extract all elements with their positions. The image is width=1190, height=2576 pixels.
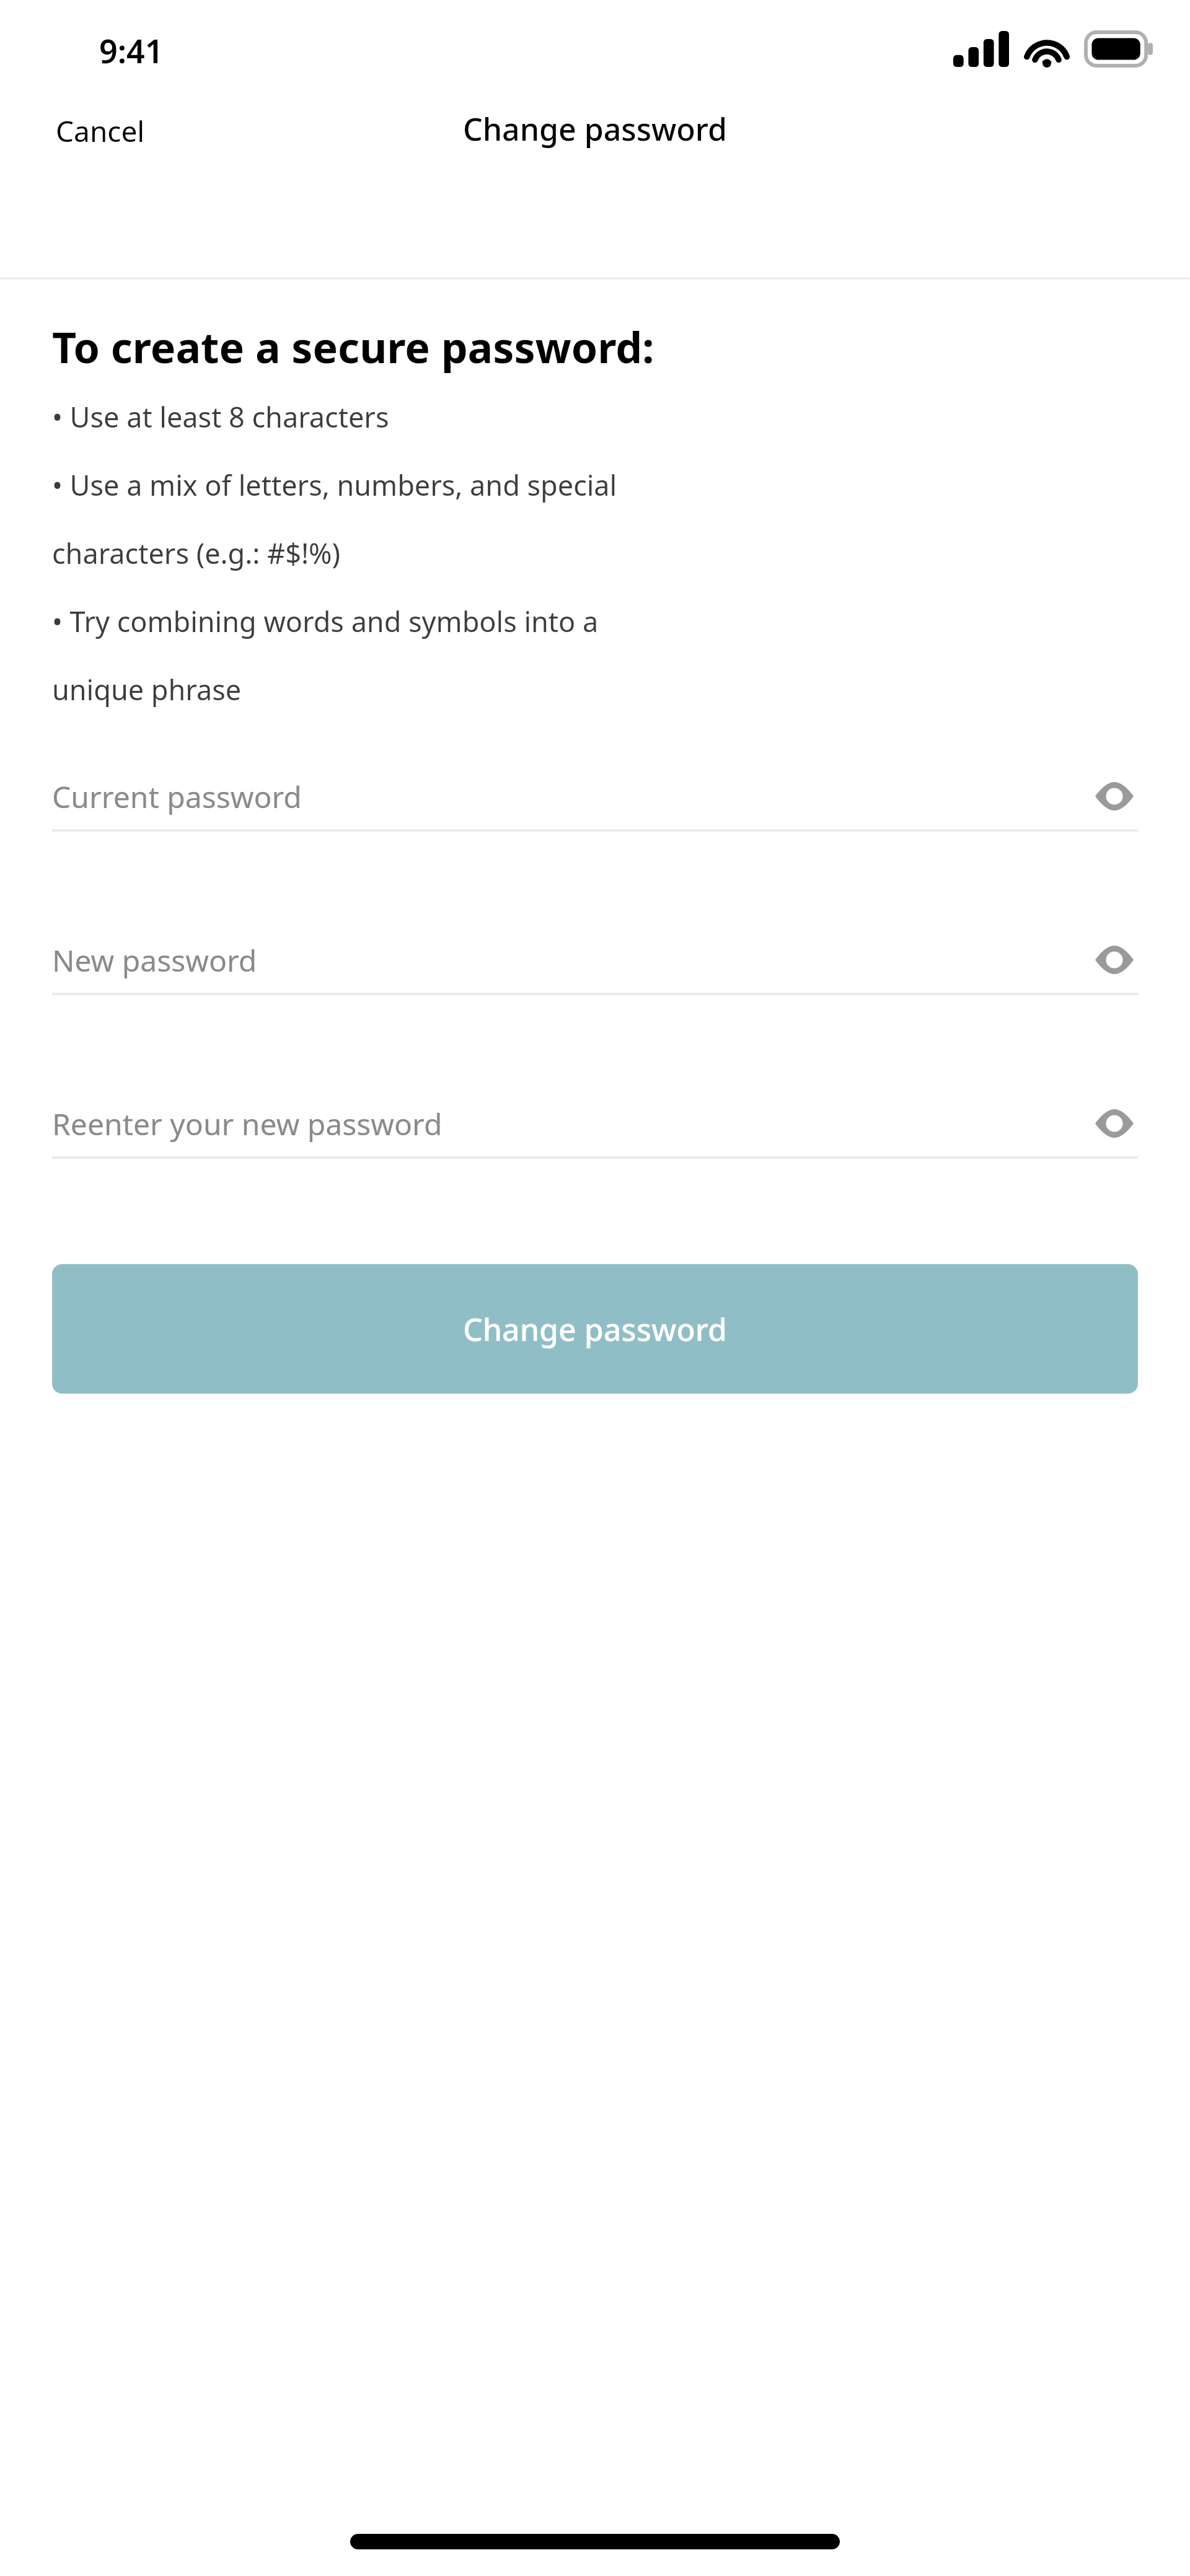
button[interactable]: Show password [1091, 936, 1138, 983]
staticText: • Use at least 8 characters • Use a mix … [52, 398, 617, 709]
button[interactable]: Reenter your new password [52, 1091, 1138, 1159]
staticText: Current password [52, 776, 1091, 817]
button[interactable]: Cancel [52, 104, 149, 158]
staticText: Change password [463, 108, 727, 150]
button[interactable]: Change password [52, 1264, 1138, 1394]
staticText: Reenter your new password [52, 1104, 1091, 1144]
staticText: Cancel [56, 112, 145, 151]
button[interactable]: New password [52, 927, 1138, 995]
staticText: To create a secure password: [52, 318, 654, 376]
staticText: New password [52, 940, 1091, 980]
staticText: Change password [463, 1308, 727, 1350]
button[interactable]: Current password [52, 763, 1138, 832]
button[interactable]: Show password [1091, 773, 1138, 820]
button[interactable]: Show password [1091, 1100, 1138, 1147]
staticText: 9:41 [99, 29, 164, 73]
